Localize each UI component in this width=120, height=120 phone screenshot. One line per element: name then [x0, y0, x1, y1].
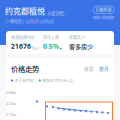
staticText: 元/㎡ [31, 45, 38, 50]
button[interactable]: 按月 [94, 65, 109, 72]
staticText: 价格走势 [11, 63, 39, 74]
staticText: 环比上周 [43, 34, 59, 40]
staticText: 21676 [11, 42, 31, 51]
staticText: 本小区均价 [15, 78, 35, 83]
staticText: 房客比 [69, 34, 81, 40]
staticText: 0.5% [43, 42, 59, 51]
staticText: 按月 [99, 65, 109, 72]
staticText: 小区详情 › [47, 10, 65, 16]
staticText: 本周挂牌均价 [11, 34, 35, 40]
staticText: 2.19w [6, 112, 16, 117]
button[interactable]: 小区详情 › [47, 10, 65, 17]
staticText: 2.84w [6, 90, 16, 95]
button[interactable]: 已绑房源 [93, 6, 114, 20]
staticText: 约克郡植悦 [5, 5, 45, 17]
staticText: 已绑房源 [95, 7, 111, 13]
staticText: 每周六消息通知 [93, 15, 114, 20]
button[interactable]: 按周 [84, 65, 94, 72]
staticText: ◎ 朝阳区 | 12月2日-12月8日 [5, 19, 54, 24]
staticText: 2.52w [6, 101, 16, 106]
staticText: 客多房少 [69, 42, 93, 51]
staticText: 朝阳区均价(元/㎡) [42, 78, 73, 83]
staticText: 按周 [84, 65, 94, 72]
